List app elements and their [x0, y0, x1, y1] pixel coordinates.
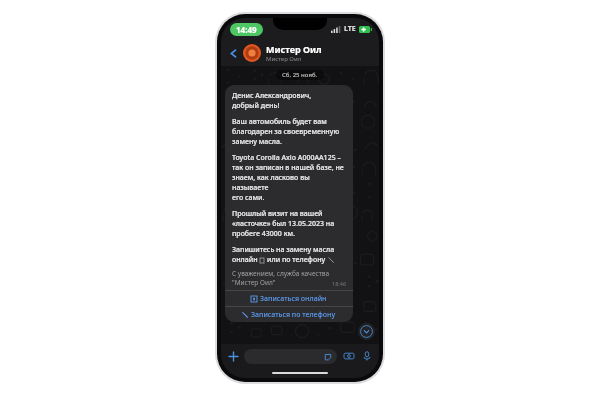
button[interactable]: Back [225, 45, 241, 61]
staticText: Toyota Corolla Axio A000AA125 – [232, 153, 341, 163]
button[interactable]: Attach [226, 349, 240, 363]
staticText: или по телефону [267, 255, 326, 265]
staticText: 14:49 [236, 24, 257, 35]
staticText: «ласточке» был 13.05.2023 на [232, 219, 335, 229]
button[interactable]: Scroll to bottom [358, 323, 375, 340]
staticText: Сб, 25 нояб. [282, 71, 318, 79]
staticText: С уважением, служба качества [232, 269, 330, 278]
button[interactable]: Записаться онлайн [225, 291, 353, 306]
button[interactable]: Мистер Оил [266, 43, 375, 63]
button[interactable]: Voice message [360, 349, 374, 363]
staticText: "Мистер Оил" [232, 278, 276, 287]
staticText: Мистер Оил [266, 43, 322, 55]
staticText: Денис Александрович, [232, 91, 312, 101]
staticText: благодарен за своевременную [232, 127, 340, 137]
staticText: Записаться по телефону [251, 310, 336, 320]
staticText: LTE [344, 24, 356, 34]
staticText: Прошлый визит на вашей [232, 209, 323, 219]
staticText: онлайн [232, 255, 258, 265]
staticText: замену масла. [232, 137, 282, 147]
staticText: Записаться онлайн [260, 294, 327, 304]
staticText: знаем, как ласково вы называете [232, 173, 347, 193]
button[interactable] [244, 349, 337, 364]
staticText: Ваш автомобиль будет вам [232, 117, 327, 127]
button[interactable]: Записаться по телефону [225, 307, 353, 322]
staticText: добрый день! [232, 101, 280, 111]
staticText: Мистер Оил [266, 55, 302, 63]
staticText: Запишитесь на замену масла [232, 245, 335, 255]
staticText: его сами. [232, 193, 265, 203]
staticText: так он записан в нашей базе, не [232, 163, 344, 173]
staticText: пробеге 43000 км. [232, 229, 295, 239]
staticText: 18:46 [332, 280, 347, 287]
button[interactable]: Camera [342, 349, 356, 363]
